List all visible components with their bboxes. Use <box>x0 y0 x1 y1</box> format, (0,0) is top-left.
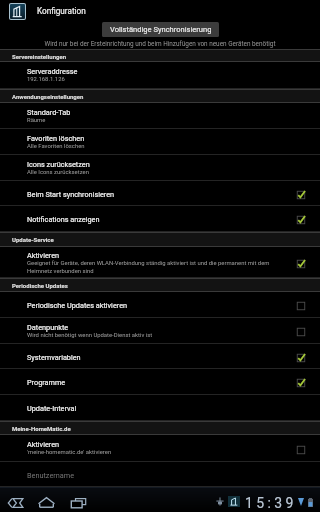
other: WLAN <box>298 498 304 506</box>
staticText: 192.168.1.126 <box>27 76 311 83</box>
staticText: Konfiguration <box>37 6 86 16</box>
staticText: Periodische Updates aktivieren <box>27 301 128 310</box>
button[interactable]: Vollständige Synchronisierung <box>102 22 219 37</box>
button[interactable]: Programme <box>0 369 320 395</box>
button[interactable]: Datenpunkte <box>0 318 320 344</box>
staticText: Geeignet für Geräte, deren WLAN-Verbindu… <box>27 260 275 274</box>
staticText: Standard-Tab <box>27 108 71 117</box>
staticText: Aktivieren <box>27 251 60 260</box>
button[interactable]: Notifications anzeigen <box>0 206 320 232</box>
staticText: Anwendungseinstellungen <box>12 93 84 100</box>
button[interactable]: Zurück <box>8 498 23 508</box>
button[interactable]: Startbildschirm <box>38 497 55 508</box>
staticText: Favoriten löschen <box>27 134 85 143</box>
staticText: Vollständige Synchronisierung <box>110 25 212 34</box>
other: Akku <box>308 498 313 507</box>
staticText: Wird nicht benötigt wenn Update-Dienst a… <box>27 332 311 339</box>
staticText: Benutzername <box>27 471 75 480</box>
staticText: Alle Favoriten löschen <box>27 143 311 150</box>
staticText: Notifications anzeigen <box>27 215 100 224</box>
button[interactable]: Aktivieren <box>0 435 320 462</box>
other: Konfiguration <box>10 4 25 19</box>
staticText: 'meine-homematic.de' aktivieren <box>27 449 311 456</box>
button[interactable]: Update-Interval <box>0 395 320 421</box>
button[interactable]: Aktivieren <box>0 247 320 278</box>
other: USB <box>216 497 224 506</box>
staticText: Periodische Updates <box>12 282 68 289</box>
staticText: Programme <box>27 378 66 387</box>
staticText: Meine-HomeMatic.de <box>12 425 71 432</box>
staticText: Serveraddresse <box>27 67 78 76</box>
other: App <box>228 496 240 507</box>
button[interactable]: Favoriten löschen <box>0 129 320 155</box>
button[interactable]: Serveraddresse <box>0 62 320 89</box>
staticText: Servereinstellungen <box>12 53 67 60</box>
staticText: Wird nur bei der Ersteinrichtung und bei… <box>0 40 320 48</box>
staticText: Datenpunkte <box>27 323 69 332</box>
staticText: Beim Start synchronisieren <box>27 190 115 199</box>
button[interactable]: Benutzername <box>0 462 320 487</box>
staticText: Update-Interval <box>27 404 77 413</box>
button[interactable]: Zuletzt verwendete Apps <box>71 498 86 508</box>
button[interactable]: Icons zurücksetzen <box>0 155 320 181</box>
staticText: Systemvariablen <box>27 353 81 362</box>
button[interactable]: Systemvariablen <box>0 344 320 369</box>
staticText: 15:39 <box>245 495 297 511</box>
button[interactable]: Standard-Tab <box>0 103 320 129</box>
button[interactable]: Beim Start synchronisieren <box>0 181 320 206</box>
staticText: Aktivieren <box>27 440 60 449</box>
staticText: Alle Icons zurücksetzen <box>27 169 311 176</box>
button[interactable]: Periodische Updates aktivieren <box>0 292 320 318</box>
staticText: Icons zurücksetzen <box>27 160 90 169</box>
staticText: Räume <box>27 117 311 124</box>
staticText: Update-Service <box>12 236 54 243</box>
